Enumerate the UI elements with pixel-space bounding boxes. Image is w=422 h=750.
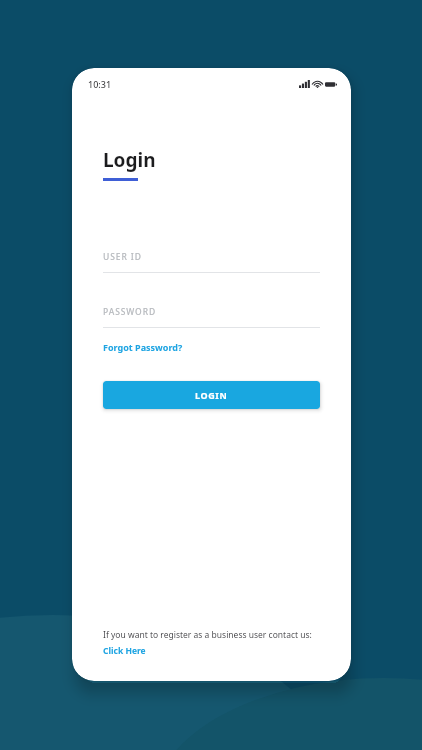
staticText: If you want to register as a business us… (103, 629, 312, 641)
staticText: Login (103, 147, 156, 173)
button[interactable]: Forgot Password? (103, 341, 183, 353)
staticText: Forgot Password? (103, 341, 183, 353)
staticText: Click Here (103, 645, 146, 657)
button[interactable]: LOGIN (103, 381, 320, 409)
button[interactable]: Click Here (103, 645, 146, 657)
staticText: LOGIN (195, 389, 228, 401)
button[interactable]: PASSWORD (103, 306, 157, 318)
staticText: 10:31 (88, 78, 112, 90)
button[interactable]: USER ID (103, 251, 142, 263)
